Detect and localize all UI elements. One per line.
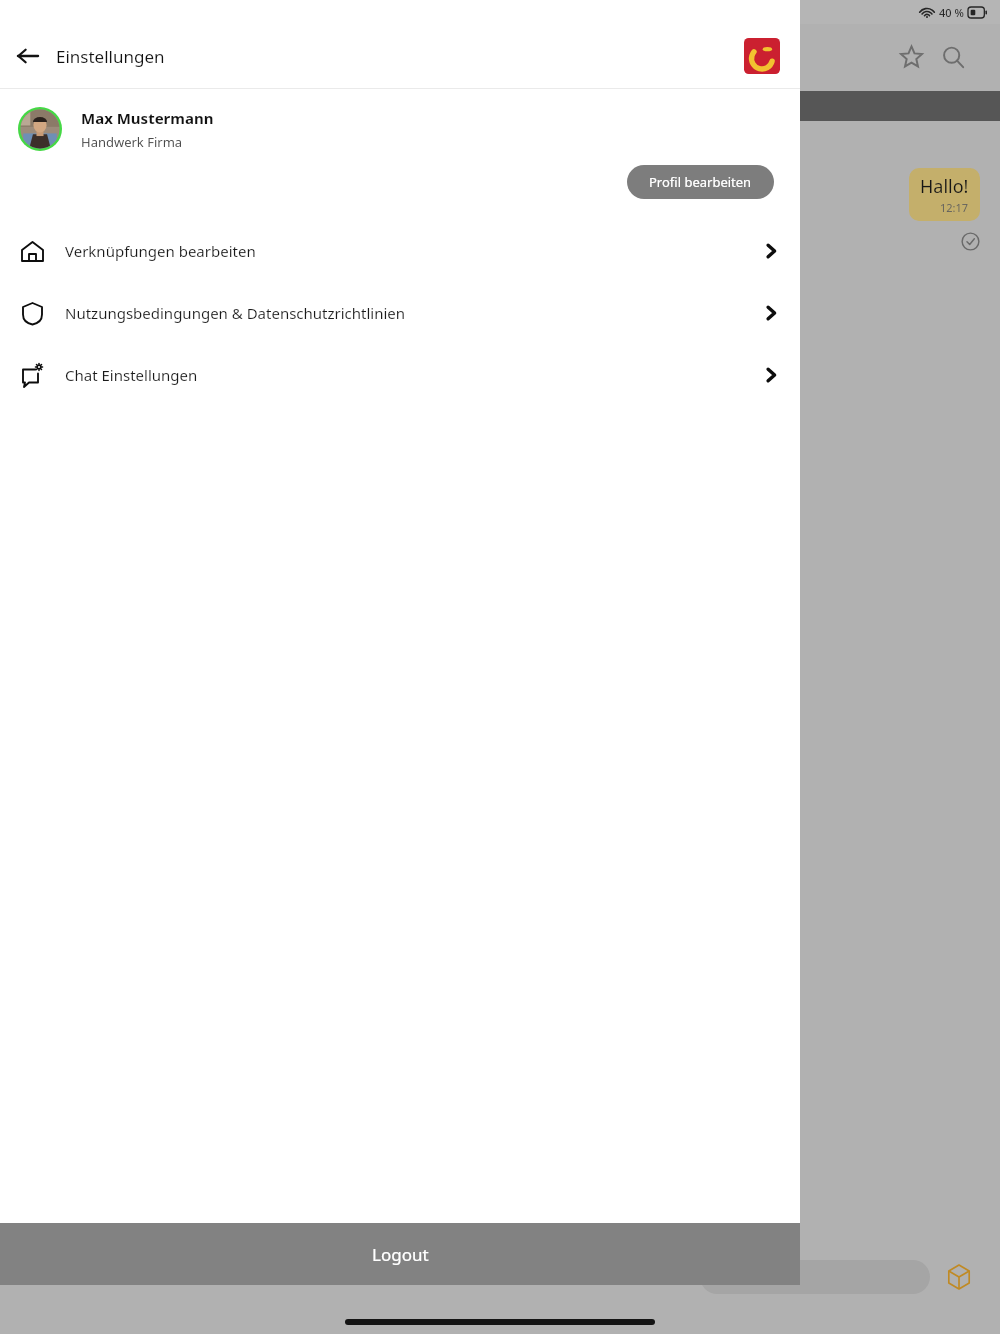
- staticText: Logout: [372, 1243, 429, 1266]
- staticText: Einstellungen: [56, 45, 165, 68]
- button[interactable]: Suche: [932, 36, 974, 78]
- button[interactable]: Profil bearbeiten: [627, 165, 774, 199]
- button[interactable]: Verknüpfungen bearbeiten: [0, 220, 800, 282]
- button[interactable]: Chat Einstellungen: [0, 344, 800, 406]
- button[interactable]: Favorit: [890, 36, 932, 78]
- button[interactable]: Zurück: [0, 28, 56, 84]
- staticText: Hallo!: [920, 174, 969, 199]
- staticText: Nutzungsbedingungen & Datenschutzrichtli…: [65, 303, 762, 323]
- button[interactable]: Nutzungsbedingungen & Datenschutzrichtli…: [0, 282, 800, 344]
- staticText: Max Mustermann: [81, 108, 214, 128]
- staticText: Handwerk Firma: [81, 133, 183, 151]
- button[interactable]: Logout: [0, 1223, 800, 1285]
- staticText: Profil bearbeiten: [649, 173, 752, 191]
- staticText: Chat Einstellungen: [65, 365, 762, 385]
- button[interactable]: App Logo: [744, 38, 780, 74]
- staticText: 12:17: [940, 200, 969, 215]
- staticText: Verknüpfungen bearbeiten: [65, 241, 762, 261]
- staticText: 40 %: [939, 5, 964, 20]
